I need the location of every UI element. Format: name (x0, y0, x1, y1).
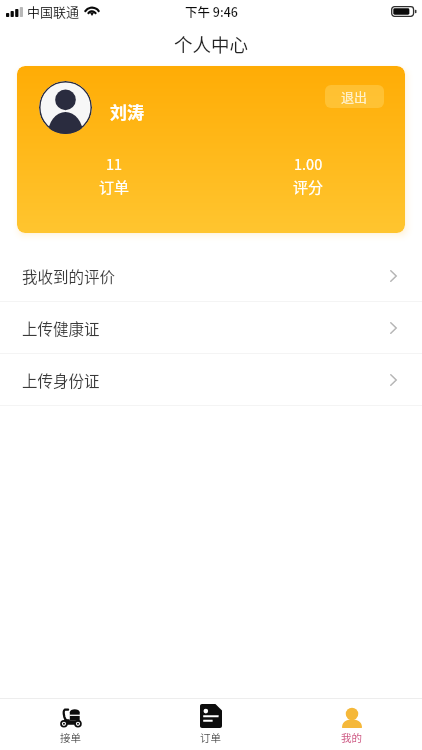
button[interactable]: 我收到的评价 (0, 250, 422, 301)
button[interactable]: 订单 (140, 699, 281, 745)
other: 接单 (59, 707, 82, 728)
staticText: 上传健康证 (22, 317, 100, 339)
staticText: 订单 (200, 730, 221, 745)
staticText: 退出 (341, 87, 368, 106)
staticText: 我的 (341, 730, 362, 745)
staticText: 11 (106, 153, 123, 174)
staticText: 上传身份证 (22, 369, 100, 391)
staticText: 刘涛 (110, 99, 144, 124)
button[interactable]: 接单 (0, 699, 140, 745)
staticText: 1.00 (294, 153, 323, 174)
other: 我的 (341, 708, 363, 728)
button[interactable]: 上传健康证 (0, 302, 422, 353)
staticText: 订单 (99, 176, 130, 198)
button[interactable]: 我的 (281, 699, 422, 745)
staticText: 评分 (293, 176, 324, 198)
button[interactable]: 刘涛 (17, 66, 405, 233)
other: 订单 (200, 704, 222, 728)
staticText: 中国联通 (27, 2, 80, 21)
staticText: 接单 (60, 730, 81, 745)
staticText: 个人中心 (174, 31, 249, 58)
staticText: 我收到的评价 (22, 265, 116, 287)
button[interactable]: 退出 (325, 85, 384, 108)
staticText: 下午 9:46 (185, 2, 238, 20)
button[interactable]: 上传身份证 (0, 354, 422, 405)
